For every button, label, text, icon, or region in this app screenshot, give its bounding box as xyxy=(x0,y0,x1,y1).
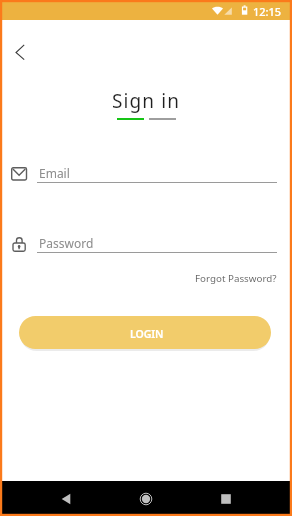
staticText: Password xyxy=(39,235,94,251)
button[interactable]: Recent apps xyxy=(210,483,242,515)
button[interactable]: Back xyxy=(3,36,37,70)
button[interactable]: Forgot Password? xyxy=(193,270,279,287)
staticText: Email xyxy=(39,165,70,181)
staticText: Sign in xyxy=(112,88,181,114)
button[interactable]: Back xyxy=(50,483,82,515)
staticText: 12:15 xyxy=(253,4,282,19)
staticText: LOGIN xyxy=(130,327,164,341)
button[interactable]: LOGIN xyxy=(19,316,271,349)
button[interactable]: Password xyxy=(37,231,277,253)
button[interactable]: Home xyxy=(130,483,162,515)
staticText: Forgot Password? xyxy=(195,272,277,285)
button[interactable]: Email xyxy=(37,161,277,183)
